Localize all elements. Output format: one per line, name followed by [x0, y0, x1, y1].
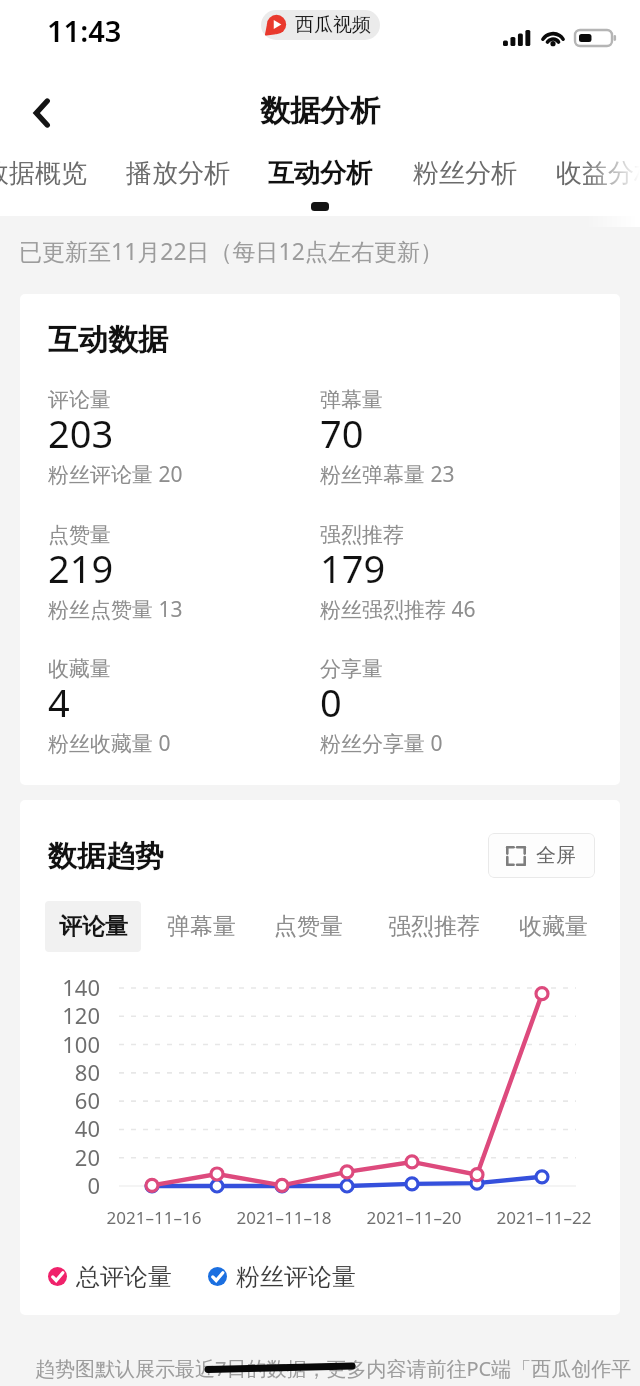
staticText: 2021–11–18	[214, 1206, 354, 1229]
staticText: 收藏量	[48, 656, 111, 682]
button[interactable]: 收藏量	[505, 901, 601, 952]
button[interactable]: 粉丝分析	[397, 157, 533, 211]
staticText: 弹幕量	[167, 912, 236, 941]
button[interactable]: 全屏	[488, 833, 595, 878]
button[interactable]: 互动分析	[252, 157, 388, 211]
button[interactable]: 收益分析	[540, 157, 640, 211]
staticText: 70	[320, 407, 364, 459]
staticText: 粉丝弹幕量 23	[320, 460, 455, 489]
staticText: 趋势图默认展示最近7日的数据，更多内容请前往PC端「西瓜创作平	[35, 1355, 632, 1382]
staticText: 100	[38, 1029, 100, 1059]
staticText: 强烈推荐	[320, 522, 404, 548]
staticText: 2021–11–22	[474, 1206, 614, 1229]
staticText: 粉丝分析	[413, 157, 517, 190]
staticText: 60	[38, 1085, 100, 1115]
staticText: 已更新至11月22日（每日12点左右更新）	[19, 235, 443, 266]
staticText: 播放分析	[126, 157, 230, 190]
staticText: 粉丝评论量 20	[48, 460, 183, 489]
button[interactable]: 数据概览	[0, 157, 103, 211]
button[interactable]: 强烈推荐	[373, 901, 494, 952]
staticText: 评论量	[48, 387, 111, 413]
staticText: 140	[38, 972, 100, 1002]
button[interactable]: 点赞量	[260, 901, 356, 952]
staticText: 粉丝评论量	[236, 1262, 356, 1290]
staticText: 179	[320, 542, 386, 594]
staticText: 粉丝强烈推荐 46	[320, 595, 476, 624]
staticText: 粉丝点赞量 13	[48, 595, 183, 624]
staticText: 粉丝收藏量 0	[48, 729, 171, 758]
button[interactable]: Back	[10, 80, 72, 142]
staticText: 203	[48, 407, 114, 459]
staticText: 点赞量	[274, 912, 343, 941]
staticText: 4	[48, 676, 70, 728]
button[interactable]: 总评论量	[48, 1262, 172, 1290]
staticText: 互动分析	[268, 157, 372, 190]
staticText: 全屏	[536, 843, 576, 868]
staticText: 11:43	[47, 11, 122, 50]
staticText: 收藏量	[519, 912, 588, 941]
staticText: 2021–11–16	[84, 1206, 224, 1229]
staticText: 80	[38, 1057, 100, 1087]
staticText: 粉丝分享量 0	[320, 729, 443, 758]
button[interactable]: 弹幕量	[153, 901, 249, 952]
button[interactable]: 粉丝评论量	[208, 1262, 356, 1290]
staticText: 2021–11–20	[344, 1206, 484, 1229]
staticText: 120	[38, 1000, 100, 1030]
staticText: 弹幕量	[320, 387, 383, 413]
staticText: 分享量	[320, 656, 383, 682]
staticText: 西瓜视频	[295, 13, 371, 37]
staticText: 强烈推荐	[388, 912, 480, 941]
staticText: 数据概览	[0, 157, 87, 190]
button[interactable]: 评论量	[45, 901, 141, 952]
staticText: 20	[38, 1142, 100, 1172]
staticText: 总评论量	[76, 1262, 172, 1290]
staticText: 数据趋势	[48, 838, 164, 875]
staticText: 收益分析	[556, 157, 640, 190]
staticText: 219	[48, 542, 114, 594]
staticText: 数据分析	[260, 92, 380, 130]
staticText: 0	[38, 1170, 100, 1200]
staticText: 评论量	[59, 912, 128, 941]
staticText: 0	[320, 676, 342, 728]
button[interactable]: 播放分析	[110, 157, 246, 211]
staticText: 互动数据	[48, 321, 168, 359]
staticText: 点赞量	[48, 522, 111, 548]
staticText: 40	[38, 1113, 100, 1143]
